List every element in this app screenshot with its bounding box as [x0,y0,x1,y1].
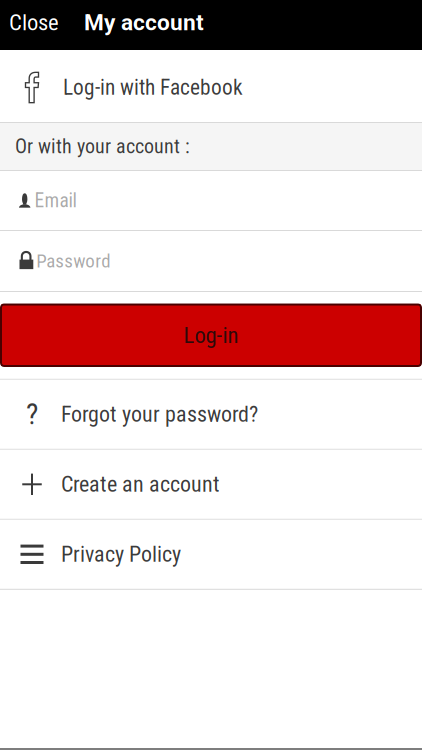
staticText: Log-in with Facebook [63,75,243,100]
staticText: Email [34,189,76,212]
button[interactable]: Email [0,171,422,230]
button[interactable]: Privacy Policy [0,520,422,589]
staticText: Or with your account : [15,135,190,158]
button[interactable]: ? [0,380,422,449]
button[interactable]: Close [0,0,66,50]
button[interactable]: Log-in [1,304,421,366]
staticText: ? [26,397,38,431]
staticText: Forgot your password? [61,401,258,427]
staticText: Close [9,9,59,36]
button[interactable]: Password [0,231,422,291]
button[interactable]: Create an account [0,450,422,519]
staticText: Create an account [61,471,220,497]
staticText: My account [84,9,204,36]
staticText: Privacy Policy [61,541,181,567]
staticText: Log-in [183,322,238,349]
staticText: Password [36,250,110,272]
button[interactable]: My account [66,0,204,50]
button[interactable]: Log-in with Facebook [0,50,422,122]
